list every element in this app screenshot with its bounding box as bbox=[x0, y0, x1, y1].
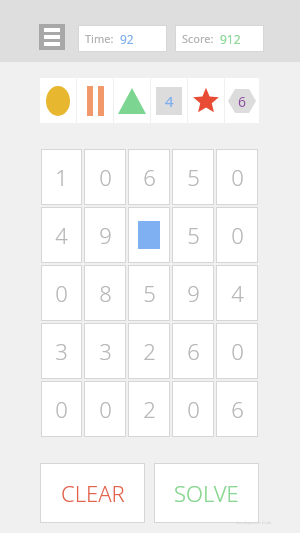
staticText: 0 bbox=[231, 162, 244, 192]
button[interactable]: 2 bbox=[128, 381, 170, 437]
button[interactable]: Menu bbox=[39, 24, 65, 50]
button[interactable]: 8 bbox=[84, 265, 126, 321]
staticText: 5 bbox=[143, 278, 156, 308]
staticText: 9 bbox=[187, 278, 200, 308]
button[interactable]: 0 bbox=[41, 265, 82, 321]
staticText: 4 bbox=[231, 278, 244, 308]
staticText: 9 bbox=[99, 220, 112, 250]
button[interactable]: 0 bbox=[172, 381, 214, 437]
staticText: CLEAR bbox=[61, 478, 125, 508]
button[interactable]: 1 bbox=[41, 149, 82, 205]
button[interactable]: 6 bbox=[172, 323, 214, 379]
button[interactable]: 0 bbox=[84, 149, 126, 205]
staticText: 5 bbox=[187, 162, 200, 192]
staticText: 0 bbox=[99, 162, 112, 192]
staticText: 1 bbox=[55, 162, 68, 192]
button[interactable]: Score: bbox=[175, 25, 264, 52]
button[interactable]: 0 bbox=[216, 323, 258, 379]
staticText: 3 bbox=[99, 336, 112, 366]
button[interactable]: 4 bbox=[41, 207, 82, 263]
button[interactable]: 6 bbox=[128, 149, 170, 205]
staticText: 4 bbox=[55, 220, 68, 250]
button[interactable]: 6 bbox=[216, 381, 258, 437]
staticText: 0 bbox=[99, 394, 112, 424]
button[interactable] bbox=[128, 207, 170, 263]
button[interactable]: 9 bbox=[172, 265, 214, 321]
staticText: 6 bbox=[187, 336, 200, 366]
staticText: Score: bbox=[182, 31, 214, 46]
button[interactable]: Time: bbox=[78, 25, 167, 52]
staticText: 6 bbox=[231, 394, 244, 424]
staticText: 6 bbox=[238, 92, 247, 111]
button[interactable]: 9 bbox=[84, 207, 126, 263]
staticText: 0 bbox=[55, 278, 68, 308]
staticText: 2 bbox=[143, 336, 156, 366]
staticText: 5 bbox=[187, 220, 200, 250]
staticText: 3 bbox=[55, 336, 68, 366]
button[interactable]: 4 bbox=[216, 265, 258, 321]
staticText: 6 bbox=[143, 162, 156, 192]
staticText: 0 bbox=[231, 336, 244, 366]
staticText: 92 bbox=[120, 31, 134, 47]
staticText: 8 bbox=[99, 278, 112, 308]
staticText: 0 bbox=[231, 220, 244, 250]
staticText: 912 bbox=[220, 31, 241, 47]
button[interactable]: Shape 2 bbox=[114, 78, 150, 123]
staticText: 4 bbox=[165, 91, 174, 111]
button[interactable]: Shape 4 bbox=[188, 78, 224, 123]
button[interactable]: 3 bbox=[84, 323, 126, 379]
button[interactable]: 5 bbox=[172, 149, 214, 205]
button[interactable]: 2 bbox=[128, 323, 170, 379]
staticText: development build bbox=[236, 520, 272, 525]
staticText: 2 bbox=[143, 394, 156, 424]
button[interactable]: 3 bbox=[41, 323, 82, 379]
button[interactable]: SOLVE bbox=[154, 463, 259, 523]
button[interactable]: 0 bbox=[84, 381, 126, 437]
button[interactable]: 5 bbox=[172, 207, 214, 263]
staticText: SOLVE bbox=[174, 478, 239, 508]
button[interactable]: 0 bbox=[216, 207, 258, 263]
staticText: Time: bbox=[85, 31, 114, 46]
button[interactable]: 5 bbox=[128, 265, 170, 321]
button[interactable]: Shape 5 bbox=[225, 78, 259, 123]
staticText: 0 bbox=[55, 394, 68, 424]
button[interactable]: Shape 1 bbox=[77, 78, 113, 123]
button[interactable]: 0 bbox=[41, 381, 82, 437]
button[interactable]: Shape 3 bbox=[151, 78, 187, 123]
button[interactable]: 0 bbox=[216, 149, 258, 205]
button[interactable]: Shape 0 bbox=[40, 78, 76, 123]
button[interactable]: CLEAR bbox=[40, 463, 145, 523]
staticText: 0 bbox=[187, 394, 200, 424]
